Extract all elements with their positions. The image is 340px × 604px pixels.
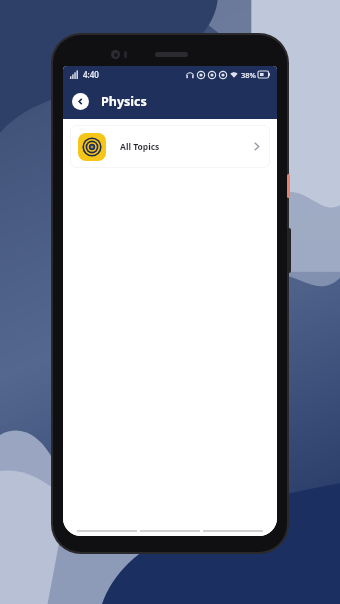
button[interactable]: Back xyxy=(72,93,89,110)
staticText: 38% xyxy=(241,70,256,80)
staticText: Physics xyxy=(101,93,147,110)
staticText: 4:40 xyxy=(83,69,99,80)
staticText: All Topics xyxy=(120,141,160,153)
button[interactable]: All Topics xyxy=(70,125,270,168)
